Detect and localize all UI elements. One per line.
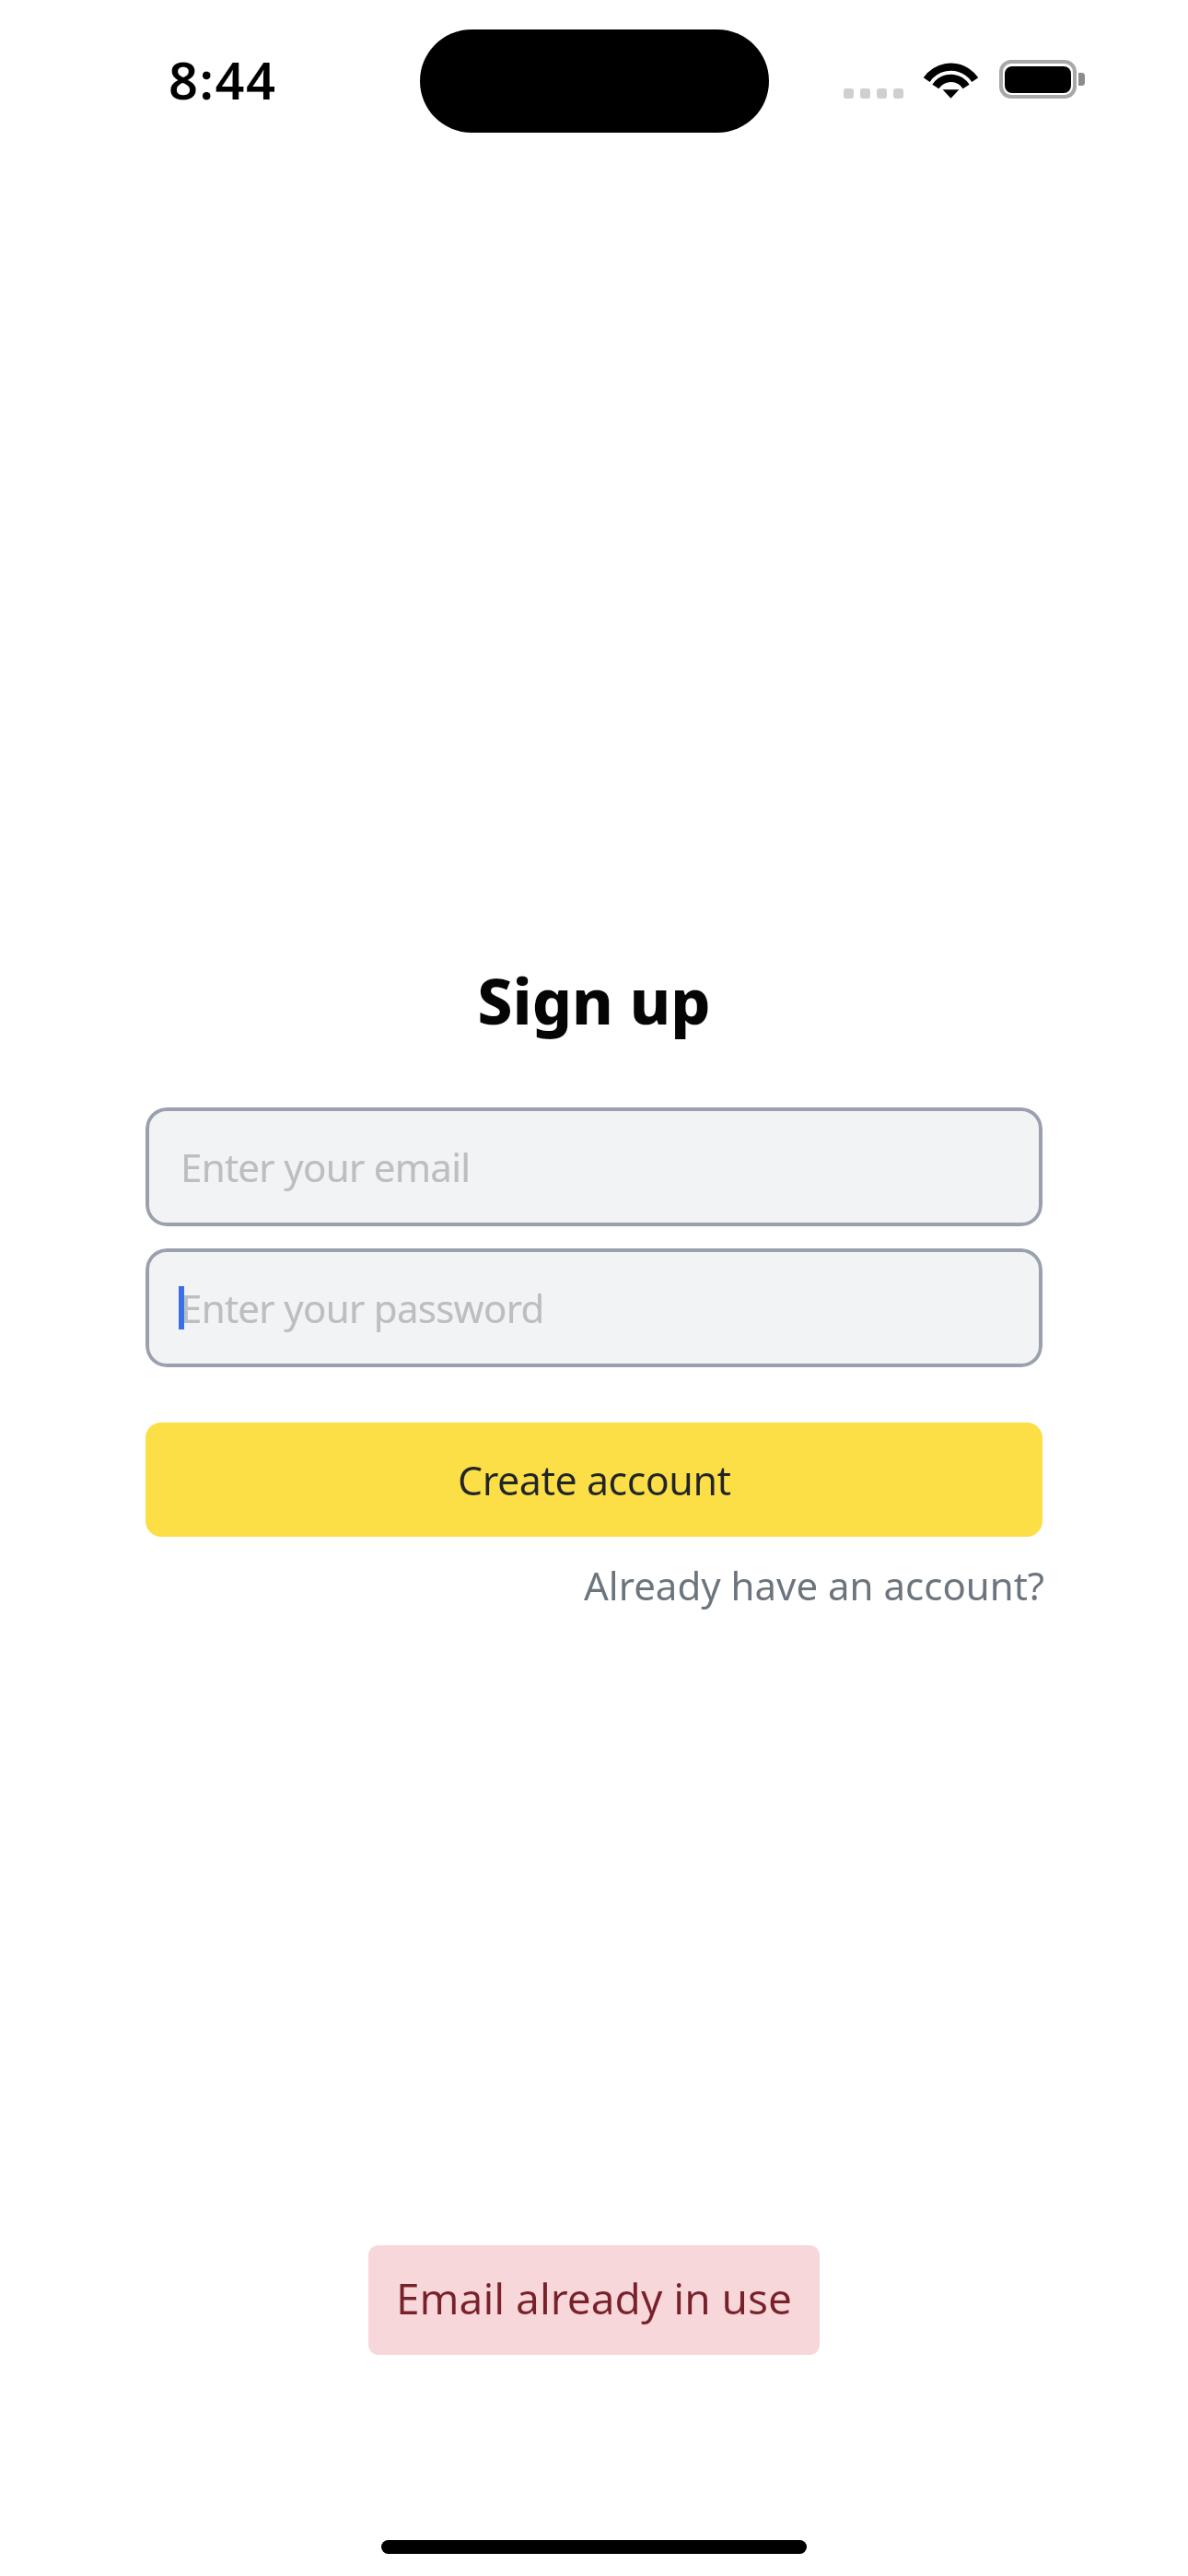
staticText: 8:44 bbox=[169, 44, 277, 114]
button[interactable]: Enter your password bbox=[146, 1248, 1042, 1367]
button[interactable]: Already have an account? bbox=[584, 1559, 1045, 1611]
button[interactable]: Create account bbox=[146, 1423, 1042, 1537]
button[interactable]: Email already in use bbox=[368, 2245, 820, 2355]
button[interactable]: Enter your email bbox=[146, 1107, 1042, 1226]
staticText: Enter your password bbox=[181, 1282, 544, 1334]
staticText: Enter your email bbox=[181, 1141, 471, 1193]
other: Cellular signal bbox=[844, 88, 903, 99]
staticText: Create account bbox=[458, 1453, 731, 1507]
other: Wi-Fi bbox=[925, 56, 977, 98]
staticText: Email already in use bbox=[396, 2269, 792, 2327]
other: Battery full bbox=[999, 60, 1077, 99]
staticText: Sign up bbox=[0, 957, 1188, 1043]
